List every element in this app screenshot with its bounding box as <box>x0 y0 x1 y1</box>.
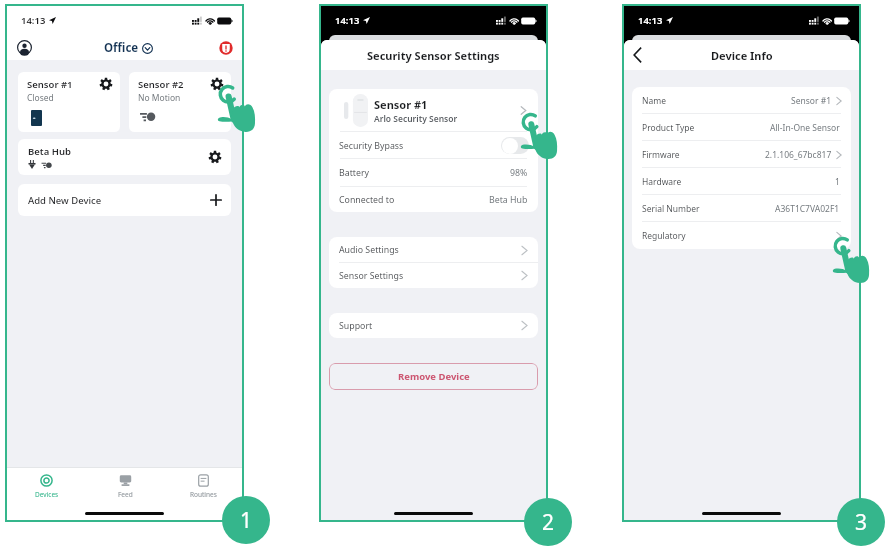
staticText: Firmware <box>642 149 680 161</box>
button[interactable]: Routines <box>164 468 242 504</box>
button[interactable]: Sensor #1 <box>18 72 120 132</box>
staticText: Name <box>642 95 666 107</box>
staticText: Arlo Security Sensor <box>374 113 458 125</box>
staticText: 14:13 <box>638 14 663 27</box>
button[interactable]: Battery <box>329 159 538 187</box>
staticText: No Motion <box>138 92 181 104</box>
staticText: 1 <box>240 506 253 535</box>
staticText: Device Info <box>711 48 773 63</box>
staticText: Closed <box>27 92 54 104</box>
button[interactable]: Feed <box>86 468 164 504</box>
button[interactable]: Beta Hub <box>18 139 231 175</box>
staticText: Office <box>104 40 139 56</box>
staticText: 14:13 <box>335 14 360 27</box>
staticText: Serial Number <box>642 203 700 215</box>
button[interactable]: Add New Device <box>18 184 231 216</box>
staticText: Sensor #1 <box>374 97 428 112</box>
button[interactable]: Hub settings <box>208 150 222 164</box>
staticText: Regulatory <box>642 230 686 242</box>
button[interactable]: Audio Settings <box>329 237 538 263</box>
staticText: Sensor #1 <box>791 95 832 107</box>
staticText: Security Bypass <box>339 140 404 152</box>
button[interactable]: Support <box>329 313 538 338</box>
button[interactable]: Hardware <box>632 168 851 195</box>
button[interactable]: Product Type <box>632 114 851 141</box>
button[interactable]: Regulatory <box>632 222 851 249</box>
staticText: Product Type <box>642 122 695 134</box>
staticText: Audio Settings <box>339 244 399 256</box>
button[interactable]: Remove Device <box>329 363 538 390</box>
staticText: Devices <box>35 490 59 499</box>
staticText: 2 <box>542 508 555 537</box>
button[interactable]: Sensor #2 <box>129 72 231 132</box>
button[interactable]: Sensor #1 <box>329 89 538 132</box>
staticText: 1 <box>835 176 840 188</box>
button[interactable]: Connected to <box>329 187 538 212</box>
button[interactable]: Serial Number <box>632 195 851 222</box>
button[interactable]: Security Bypass <box>329 132 538 159</box>
staticText: Routines <box>190 490 217 499</box>
staticText: Battery <box>339 167 370 179</box>
staticText: A36T1C7VA02F1 <box>775 203 840 215</box>
button[interactable]: Back <box>628 46 646 64</box>
button[interactable]: Sensor Settings <box>329 263 538 288</box>
button[interactable]: Firmware <box>632 141 851 168</box>
staticText: Add New Device <box>28 194 102 207</box>
staticText: Beta Hub <box>28 145 71 158</box>
staticText: Beta Hub <box>489 194 528 206</box>
button[interactable]: Name <box>632 87 851 114</box>
staticText: Sensor Settings <box>339 270 404 282</box>
button[interactable]: Device settings <box>99 77 113 91</box>
staticText: Hardware <box>642 176 682 188</box>
staticText: Connected to <box>339 194 395 206</box>
button[interactable]: Devices <box>7 468 86 504</box>
button[interactable]: Alerts <box>219 41 233 55</box>
staticText: Security Sensor Settings <box>367 48 500 63</box>
staticText: Feed <box>118 490 133 499</box>
staticText: 98% <box>510 167 528 179</box>
button[interactable]: Office <box>104 40 153 56</box>
staticText: Remove Device <box>398 370 470 383</box>
staticText: Support <box>339 320 373 332</box>
staticText: 2.1.106_67bc817 <box>765 149 832 161</box>
staticText: All-In-One Sensor <box>770 122 840 134</box>
staticText: Sensor #2 <box>138 78 184 91</box>
button[interactable]: Device settings <box>210 77 224 91</box>
staticText: 3 <box>855 508 868 537</box>
staticText: 14:13 <box>21 14 46 27</box>
staticText: Sensor #1 <box>27 78 73 91</box>
button[interactable]: Profile <box>17 40 32 55</box>
